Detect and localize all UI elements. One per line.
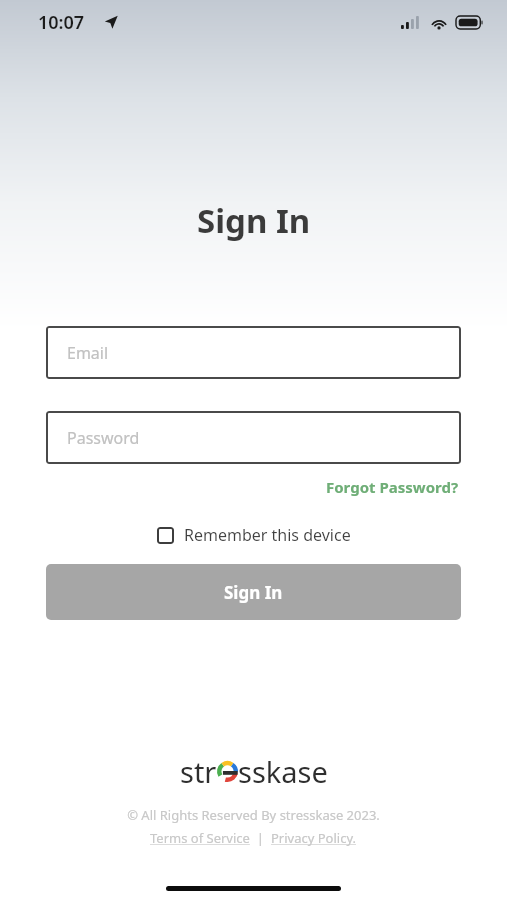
button[interactable]: Privacy Policy. xyxy=(271,829,357,847)
button[interactable]: Password xyxy=(46,411,461,464)
staticText: sskase xyxy=(238,752,328,791)
button[interactable]: Sign In xyxy=(46,564,461,620)
staticText: Forgot Password? xyxy=(326,477,459,497)
button[interactable]: Email xyxy=(46,326,461,379)
staticText: Email xyxy=(67,342,109,364)
staticText: 10:07 xyxy=(38,10,85,35)
button[interactable]: Remember this device xyxy=(153,520,355,550)
button[interactable]: Forgot Password? xyxy=(324,474,461,500)
staticText: Password xyxy=(67,427,140,449)
staticText: Sign In xyxy=(197,198,311,243)
staticText: Sign In xyxy=(224,581,283,604)
staticText: Remember this device xyxy=(184,524,351,546)
staticText: © All Rights Reserved By stresskase 2023… xyxy=(127,806,380,824)
button[interactable]: Terms of Service xyxy=(150,829,250,847)
staticText: Terms of Service xyxy=(150,829,250,847)
staticText: Privacy Policy. xyxy=(271,829,357,847)
staticText: str xyxy=(180,752,217,791)
staticText: | xyxy=(250,829,271,847)
